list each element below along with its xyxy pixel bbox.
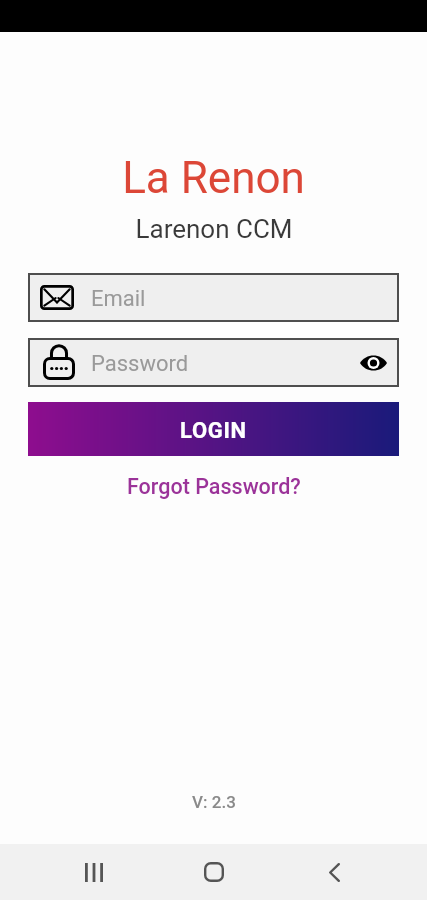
button[interactable]: Recent apps [34,844,154,900]
staticText: Email [91,286,146,312]
button[interactable]: Email [28,273,399,322]
button[interactable]: Home [154,844,274,900]
button[interactable]: LOGIN [28,402,399,456]
staticText: La Renon [122,152,305,204]
staticText: Forgot Password? [127,474,301,499]
button[interactable]: Forgot Password? [121,470,307,503]
button[interactable]: Password [28,338,399,387]
staticText: V: 2.3 [192,792,236,812]
button[interactable]: Back [274,844,394,900]
staticText: Larenon CCM [135,214,293,244]
button[interactable]: Show password [354,344,392,382]
staticText: Password [91,351,189,377]
staticText: LOGIN [180,418,247,444]
